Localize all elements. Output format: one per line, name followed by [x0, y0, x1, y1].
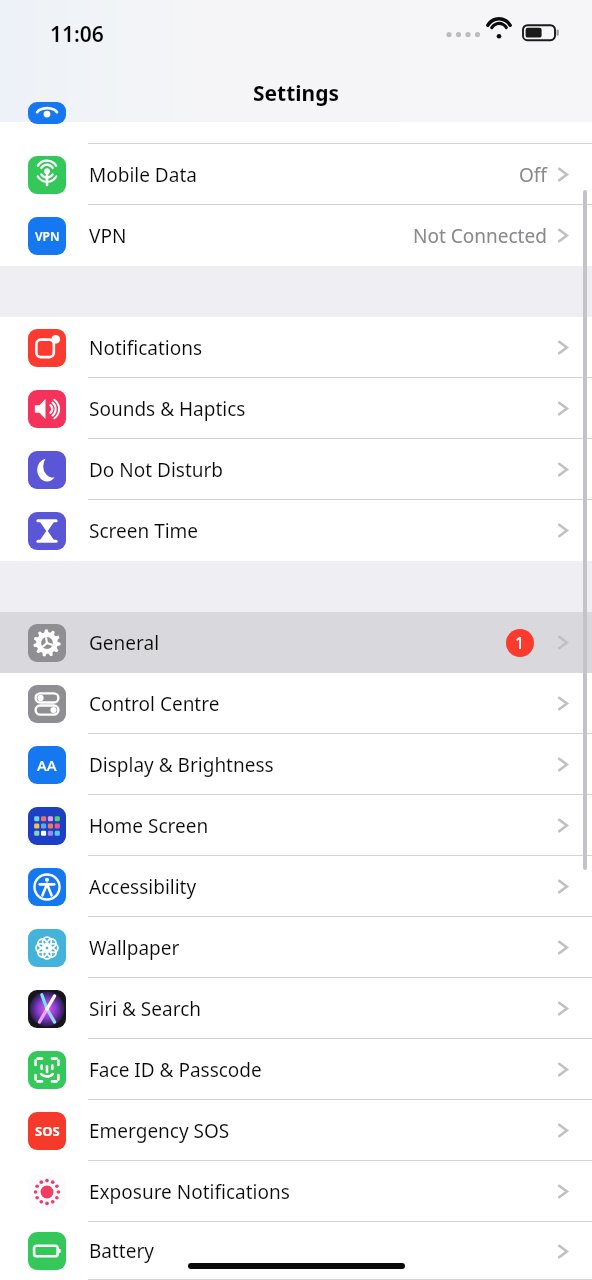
button[interactable]: Accessibility	[0, 856, 592, 917]
staticText: Face ID & Passcode	[89, 1057, 262, 1083]
staticText: Battery	[89, 1238, 154, 1264]
other: Home Screen	[28, 807, 66, 845]
button[interactable]: Emergency SOS	[0, 1100, 592, 1161]
staticText: Control Centre	[89, 691, 220, 717]
other: Control Centre	[28, 685, 66, 723]
staticText: Not Connected	[413, 223, 547, 249]
other: Battery	[28, 1232, 66, 1270]
other: Sounds and Haptics	[28, 390, 66, 428]
staticText: AA	[37, 755, 57, 775]
staticText: Home Screen	[89, 813, 209, 839]
staticText: Siri & Search	[89, 996, 202, 1022]
other: Mobile Data	[28, 156, 66, 194]
other: Emergency SOS	[28, 1112, 66, 1150]
button[interactable]: Home Screen	[0, 795, 592, 856]
staticText: Screen Time	[89, 518, 199, 544]
button[interactable]: Siri and Search	[0, 978, 592, 1039]
staticText: Do Not Disturb	[89, 457, 224, 483]
button[interactable]: Display and Brightness	[0, 734, 592, 795]
staticText: VPN	[35, 228, 60, 244]
other: Display and Brightness	[28, 746, 66, 784]
button[interactable]: Face ID and Passcode	[0, 1039, 592, 1100]
button[interactable]: Notifications	[0, 317, 592, 378]
staticText: Off	[519, 162, 547, 188]
staticText: Wallpaper	[89, 935, 180, 961]
other: Do Not Disturb	[28, 451, 66, 489]
staticText: SOS	[35, 1122, 60, 1140]
staticText: General	[89, 630, 160, 656]
staticText: VPN	[89, 223, 127, 249]
button[interactable]: Sounds and Haptics	[0, 378, 592, 439]
staticText: Accessibility	[89, 874, 197, 900]
staticText: Display & Brightness	[89, 752, 274, 778]
staticText: 1	[515, 632, 525, 654]
button[interactable]: Mobile Data	[0, 144, 592, 205]
button[interactable]: Wallpaper	[0, 917, 592, 978]
other: Exposure Notifications	[28, 1173, 66, 1211]
other: Wallpaper	[28, 929, 66, 967]
other: Notifications	[28, 329, 66, 367]
other: Siri and Search	[28, 990, 66, 1028]
button[interactable]: Do Not Disturb	[0, 439, 592, 500]
staticText: Mobile Data	[89, 162, 197, 188]
button[interactable]: Control Centre	[0, 673, 592, 734]
other: VPN	[28, 217, 66, 255]
button[interactable]: Exposure Notifications	[0, 1161, 592, 1222]
button[interactable]: Battery	[0, 1222, 592, 1280]
button[interactable]: General	[0, 612, 592, 673]
staticText: Settings	[0, 79, 592, 108]
staticText: Exposure Notifications	[89, 1179, 290, 1205]
other: Accessibility	[28, 868, 66, 906]
button[interactable]: Screen Time	[0, 500, 592, 561]
other: Screen Time	[28, 512, 66, 550]
staticText: Notifications	[89, 335, 203, 361]
other: Face ID and Passcode	[28, 1051, 66, 1089]
staticText: Sounds & Haptics	[89, 396, 246, 422]
staticText: 11:06	[50, 20, 104, 49]
button[interactable]: VPN	[0, 205, 592, 266]
other: General	[28, 624, 66, 662]
staticText: Emergency SOS	[89, 1118, 230, 1144]
